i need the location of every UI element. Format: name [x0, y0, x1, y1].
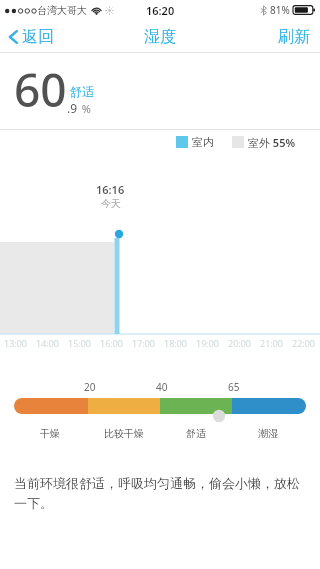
staticText: 舒适 [186, 427, 206, 440]
staticText: 18:00 [164, 337, 188, 349]
staticText: 当前环境很舒适，呼吸均匀通畅，偷会小懒，放松一下。 [14, 475, 306, 512]
staticText: 15:00 [68, 337, 92, 349]
staticText: 湿度 [144, 27, 176, 47]
staticText: 22:00 [292, 337, 316, 349]
button[interactable] [14, 398, 306, 414]
staticText: 比较干燥 [104, 427, 144, 440]
staticText: 81% [270, 3, 290, 17]
staticText: 21:00 [260, 337, 284, 349]
button[interactable]: 刷新 [266, 21, 320, 53]
staticText: 40 [156, 380, 168, 394]
staticText: 返回 [22, 27, 54, 47]
staticText: 室内 [192, 135, 214, 149]
other: Back [8, 28, 19, 46]
staticText: 16:00 [100, 337, 124, 349]
staticText: 17:00 [132, 337, 156, 349]
staticText: 14:00 [36, 337, 60, 349]
staticText: 台湾大哥大 [37, 4, 87, 17]
button[interactable]: Back [0, 23, 64, 51]
staticText: 干燥 [40, 427, 60, 440]
staticText: 20 [84, 380, 96, 394]
staticText: .9 [67, 100, 78, 116]
staticText: 20:00 [228, 337, 252, 349]
staticText: 13:00 [4, 337, 28, 349]
staticText: 19:00 [196, 337, 220, 349]
staticText: 今天 [101, 197, 121, 210]
staticText: 舒适 [70, 84, 94, 99]
staticText: 16:20 [146, 3, 175, 18]
staticText: 65 [228, 380, 240, 394]
staticText: 室外 55% [248, 135, 296, 150]
staticText: 16:16 [96, 182, 125, 197]
staticText: 潮湿 [258, 427, 278, 440]
staticText: 60 [14, 58, 67, 121]
staticText: % [79, 101, 92, 116]
